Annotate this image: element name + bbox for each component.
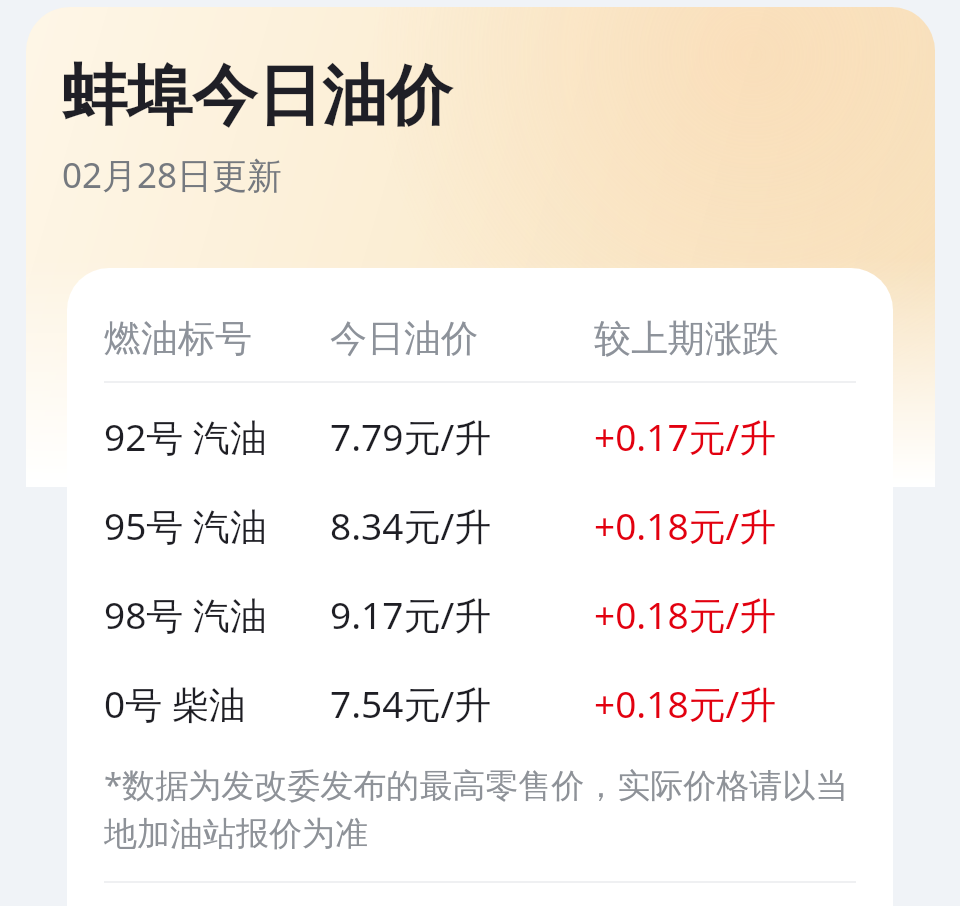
- staticText: 燃油标号: [104, 315, 252, 362]
- staticText: 7.79元/升: [330, 411, 492, 462]
- staticText: +0.18元/升: [594, 678, 777, 729]
- staticText: 9.17元/升: [330, 589, 492, 640]
- button[interactable]: 95号 汽油: [104, 481, 856, 570]
- staticText: 92号 汽油: [104, 411, 267, 462]
- staticText: 7.54元/升: [330, 678, 492, 729]
- staticText: +0.17元/升: [594, 411, 777, 462]
- staticText: 8.34元/升: [330, 500, 492, 551]
- staticText: +0.18元/升: [594, 500, 777, 551]
- staticText: *数据为发改委发布的最高零售价，实际价格请以当地加油站报价为准: [104, 762, 856, 855]
- staticText: +0.18元/升: [594, 589, 777, 640]
- staticText: 02月28日更新: [62, 151, 283, 199]
- button[interactable]: 98号 汽油: [104, 570, 856, 659]
- staticText: 今日油价: [330, 315, 478, 362]
- button[interactable]: 92号 汽油: [104, 392, 856, 481]
- staticText: 较上期涨跌: [594, 315, 779, 362]
- staticText: 0号 柴油: [104, 678, 246, 729]
- staticText: 95号 汽油: [104, 500, 267, 551]
- staticText: 98号 汽油: [104, 589, 267, 640]
- staticText: 蚌埠今日油价: [62, 55, 452, 137]
- button[interactable]: 0号 柴油: [104, 659, 856, 748]
